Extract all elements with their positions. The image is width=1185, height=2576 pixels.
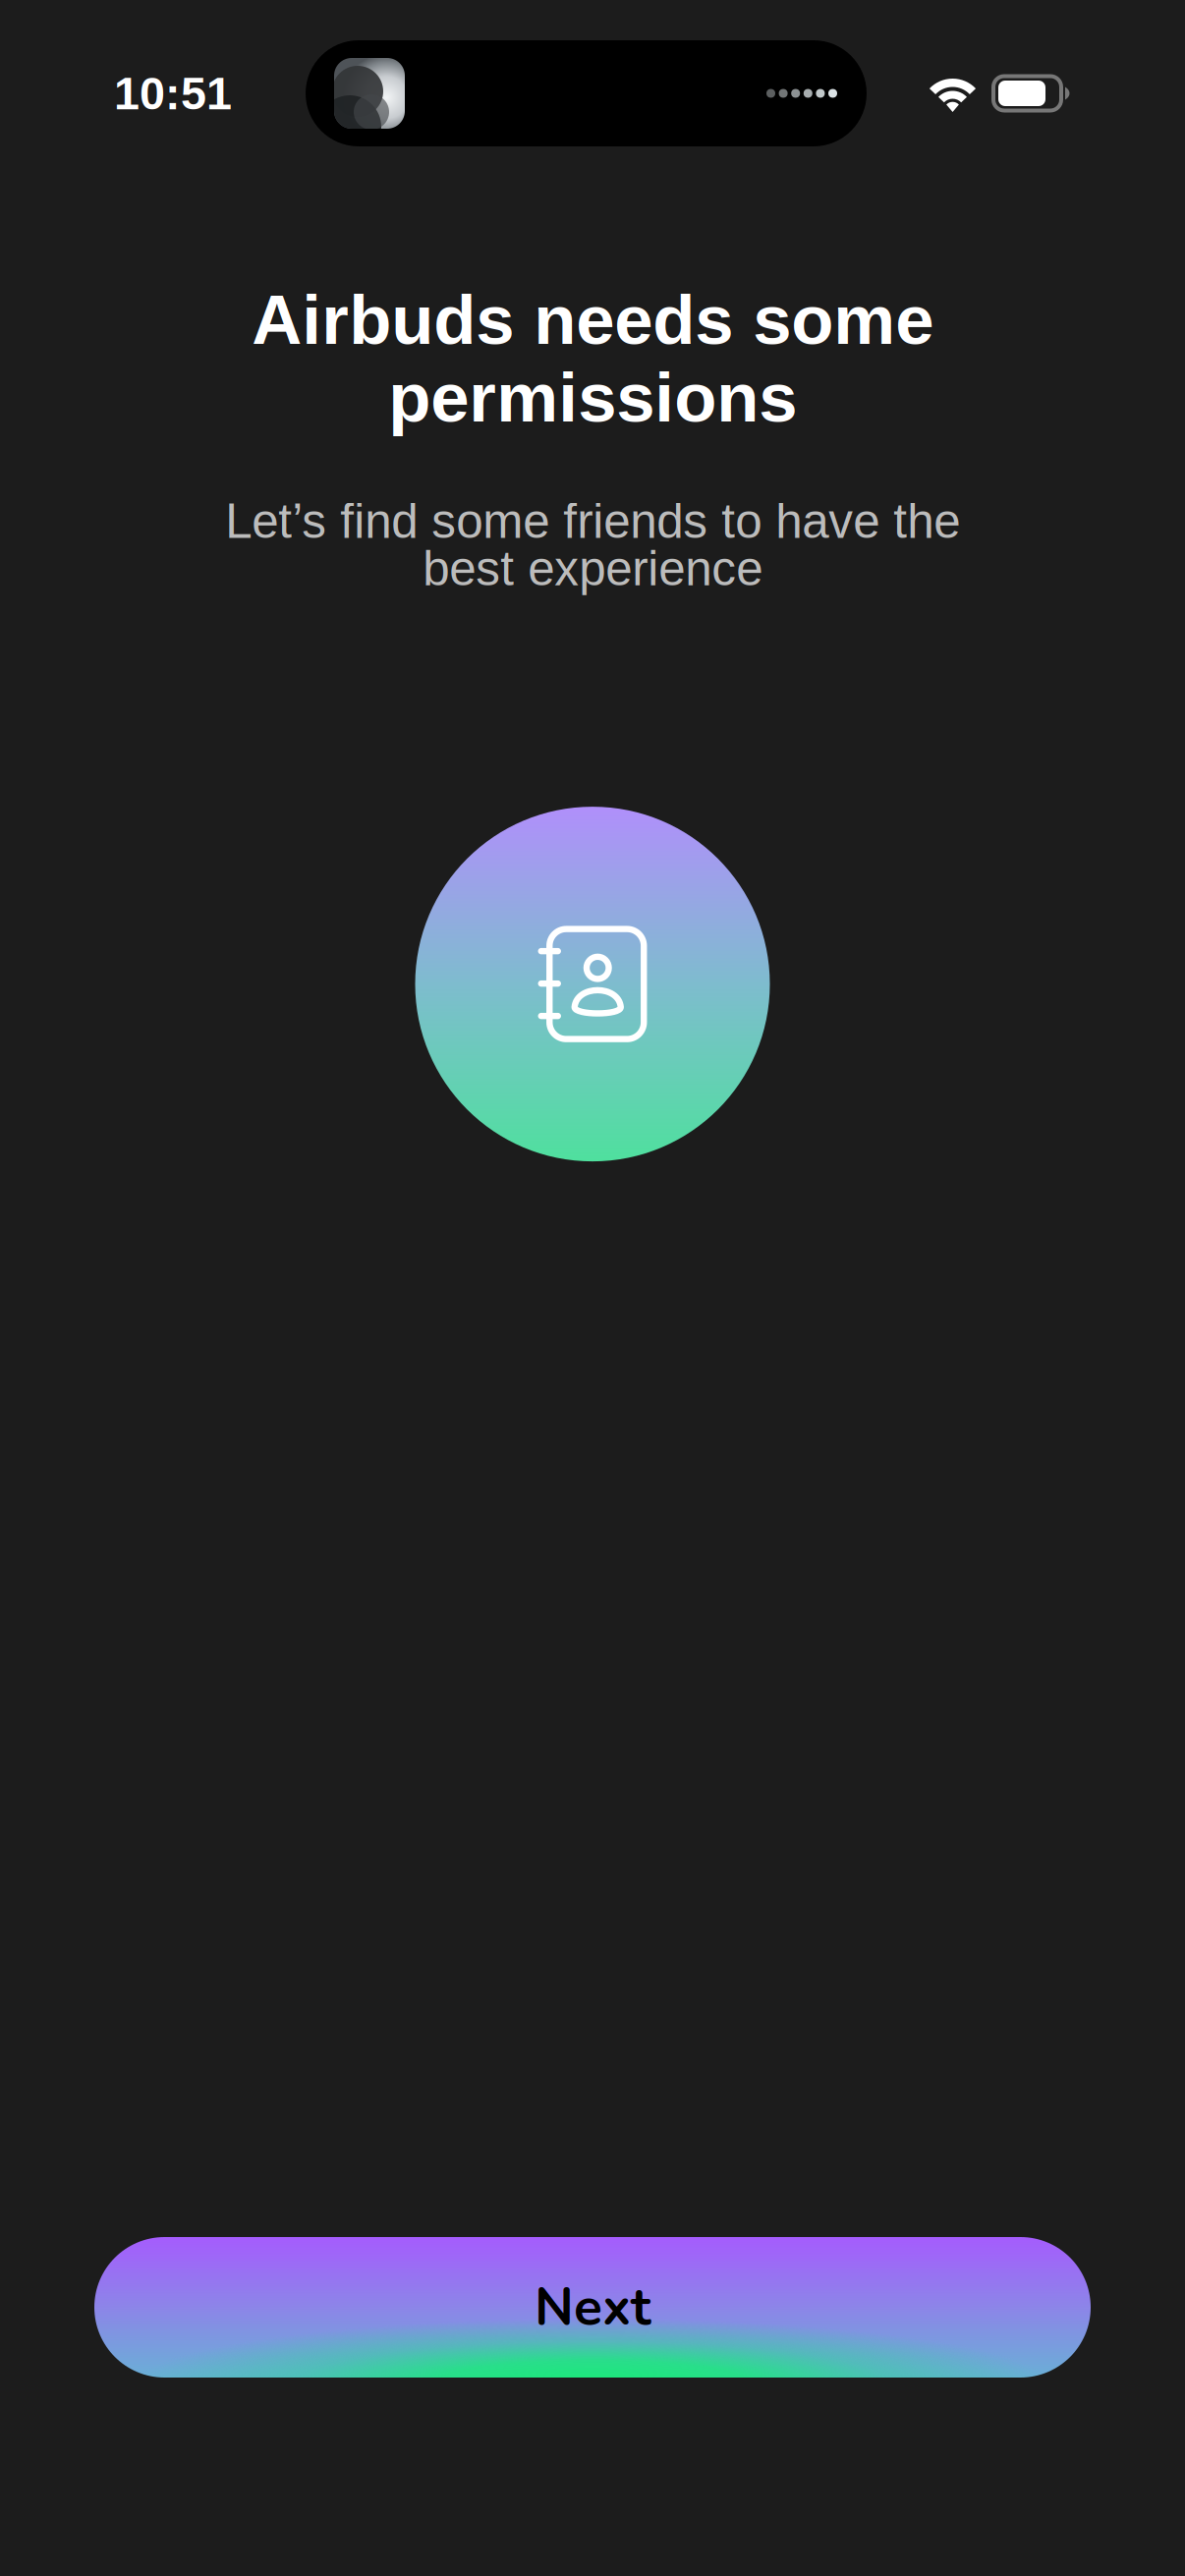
staticText: Airbuds needs some permissions <box>252 281 933 436</box>
staticText: 10:51 <box>114 68 232 119</box>
staticText: Let’s find some friends to have the best… <box>225 494 960 595</box>
staticText: Next <box>535 2272 650 2343</box>
button[interactable]: Next <box>94 2237 1091 2378</box>
